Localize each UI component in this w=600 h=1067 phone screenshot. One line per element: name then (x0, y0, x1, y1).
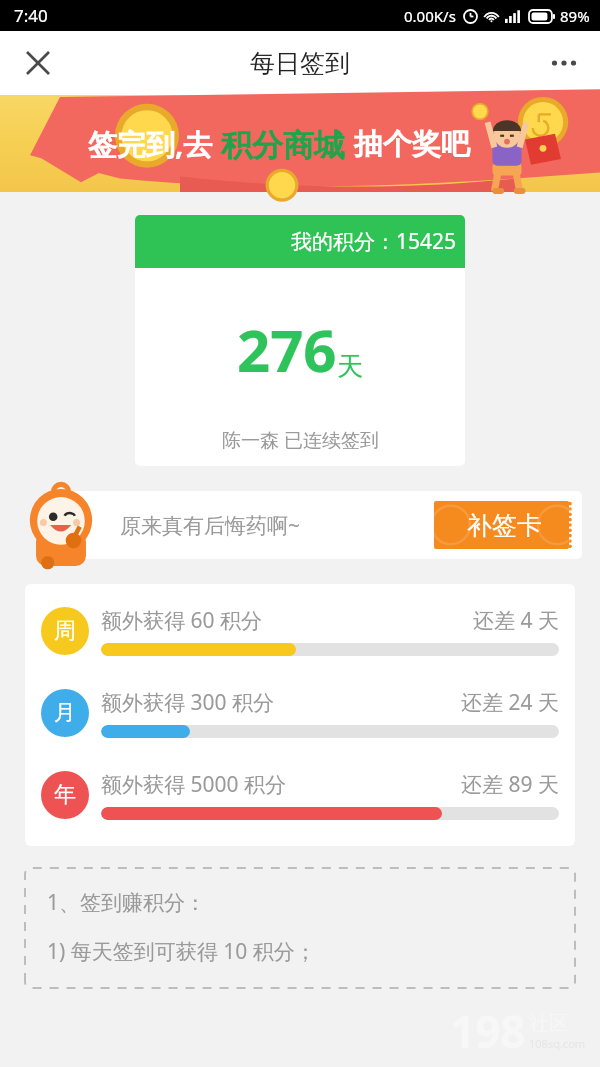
staticText: 每日签到 (250, 48, 350, 79)
button[interactable]: Close (14, 39, 62, 87)
button[interactable]: 补签卡 (434, 501, 574, 549)
staticText: 108sq.com (529, 1036, 586, 1051)
staticText: 月 (54, 699, 76, 727)
staticText: 额外获得 60 积分 (101, 606, 262, 635)
staticText: 年 (54, 781, 76, 809)
staticText: 0.00K/s (404, 6, 456, 26)
staticText: 周 (54, 617, 76, 645)
staticText: 陈一森 已连续签到 (222, 427, 379, 453)
staticText: 签完到,去 (88, 124, 213, 164)
staticText: 补签卡 (467, 510, 542, 541)
staticText: 还差 89 天 (461, 770, 559, 799)
staticText: 276 (237, 310, 337, 389)
staticText: 1) 每天签到可获得 10 积分； (47, 937, 316, 966)
staticText: 7:40 (14, 4, 48, 27)
staticText: 积分商城 (213, 123, 354, 165)
staticText: 还差 24 天 (461, 688, 559, 717)
button[interactable]: 年 (25, 770, 575, 820)
button[interactable]: 我的积分：15425 (135, 215, 465, 466)
staticText: 我的积分：15425 (291, 227, 457, 256)
staticText: 额外获得 5000 积分 (101, 770, 286, 799)
button[interactable]: 周 (25, 606, 575, 656)
staticText: 原来真有后悔药啊~ (120, 511, 301, 540)
button[interactable]: More options (540, 39, 588, 87)
staticText: 抽个奖吧 (354, 126, 470, 163)
staticText: 1、签到赚积分： (47, 888, 207, 917)
staticText: 89% (560, 6, 590, 26)
staticText: 还差 4 天 (473, 606, 559, 635)
staticText: 天 (337, 350, 363, 383)
button[interactable]: 月 (25, 688, 575, 738)
button[interactable]: 签完到,去 (0, 95, 600, 192)
staticText: 额外获得 300 积分 (101, 688, 274, 717)
